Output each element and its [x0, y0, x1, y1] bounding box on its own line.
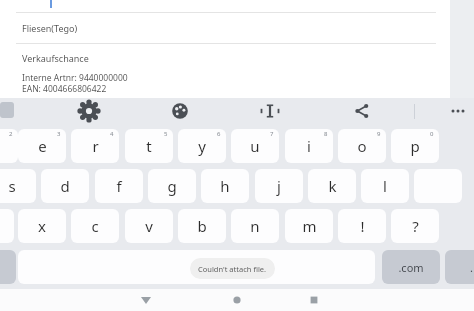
staticText: !	[360, 216, 365, 236]
button[interactable]: 4	[71, 129, 119, 163]
staticText: v	[145, 216, 153, 236]
staticText: o	[357, 136, 367, 156]
staticText: p	[410, 136, 420, 156]
button[interactable]: x	[18, 209, 66, 243]
button[interactable]	[0, 250, 16, 284]
staticText: 9	[377, 130, 381, 138]
staticText: f	[116, 176, 122, 196]
staticText: e	[38, 136, 47, 156]
button[interactable]: n	[231, 209, 279, 243]
button[interactable]: !	[338, 209, 386, 243]
staticText: 3	[57, 130, 61, 138]
staticText: 7	[270, 130, 274, 138]
staticText: n	[250, 216, 260, 236]
button[interactable]: v	[125, 209, 173, 243]
button[interactable]: m	[285, 209, 333, 243]
button[interactable]: 6	[178, 129, 226, 163]
button[interactable]: 3	[18, 129, 66, 163]
staticText: Interne Artnr: 9440000000	[22, 72, 128, 84]
button[interactable]: 5	[125, 129, 173, 163]
button[interactable]	[0, 209, 14, 243]
button[interactable]: 9	[338, 129, 386, 163]
button[interactable]: Theme	[167, 98, 193, 124]
staticText: b	[197, 216, 207, 236]
button[interactable]: f	[95, 169, 143, 203]
button[interactable]: .com	[382, 250, 440, 284]
button[interactable]: .	[445, 250, 474, 284]
staticText: x	[38, 216, 46, 236]
button[interactable]: b	[178, 209, 226, 243]
staticText: r	[92, 136, 99, 156]
staticText: 2	[9, 130, 13, 138]
staticText: m	[302, 216, 317, 236]
button[interactable]: Text cursor	[257, 98, 283, 124]
button[interactable]: d	[41, 169, 89, 203]
button[interactable]: More options	[445, 98, 471, 124]
button[interactable]: k	[308, 169, 356, 203]
staticText: k	[328, 176, 337, 196]
staticText: 6	[217, 130, 221, 138]
button[interactable]: h	[201, 169, 249, 203]
staticText: EAN: 4004666806422	[22, 83, 107, 95]
button[interactable]: Hide keyboard	[135, 289, 157, 311]
staticText: j	[277, 176, 281, 196]
button[interactable]: 2	[0, 129, 18, 163]
staticText: .com	[398, 260, 424, 275]
staticText: Fliesen(Tego)	[22, 22, 78, 34]
button[interactable]: 0	[391, 129, 439, 163]
staticText: h	[220, 176, 230, 196]
staticText: .	[470, 260, 473, 275]
staticText: d	[60, 176, 70, 196]
button[interactable]: ?	[391, 209, 439, 243]
button[interactable]: j	[255, 169, 303, 203]
staticText: c	[91, 216, 99, 236]
button[interactable]: Recent apps	[303, 289, 325, 311]
staticText: y	[198, 136, 206, 156]
staticText: i	[307, 136, 311, 156]
button[interactable]: s	[0, 169, 36, 203]
staticText: l	[383, 176, 387, 196]
staticText: Couldn't attach file.	[198, 264, 267, 274]
staticText: s	[8, 176, 16, 196]
staticText: 4	[110, 130, 114, 138]
button[interactable]: Settings	[76, 98, 102, 124]
button[interactable]: g	[148, 169, 196, 203]
button[interactable]: l	[361, 169, 409, 203]
button[interactable]: Verkaufschance	[0, 44, 450, 98]
staticText: ?	[412, 216, 419, 236]
button[interactable]	[18, 250, 375, 284]
staticText: Verkaufschance	[22, 52, 89, 64]
staticText: 5	[164, 130, 168, 138]
button[interactable]: Fliesen(Tego)	[0, 13, 450, 49]
button[interactable]: 8	[285, 129, 333, 163]
button[interactable]: c	[71, 209, 119, 243]
button[interactable]: Home	[226, 289, 248, 311]
staticText: g	[167, 176, 177, 196]
staticText: u	[250, 136, 260, 156]
staticText: 8	[324, 130, 328, 138]
button[interactable]: 7	[231, 129, 279, 163]
staticText: 0	[430, 130, 434, 138]
button[interactable]: Share	[349, 98, 375, 124]
staticText: t	[146, 136, 152, 156]
